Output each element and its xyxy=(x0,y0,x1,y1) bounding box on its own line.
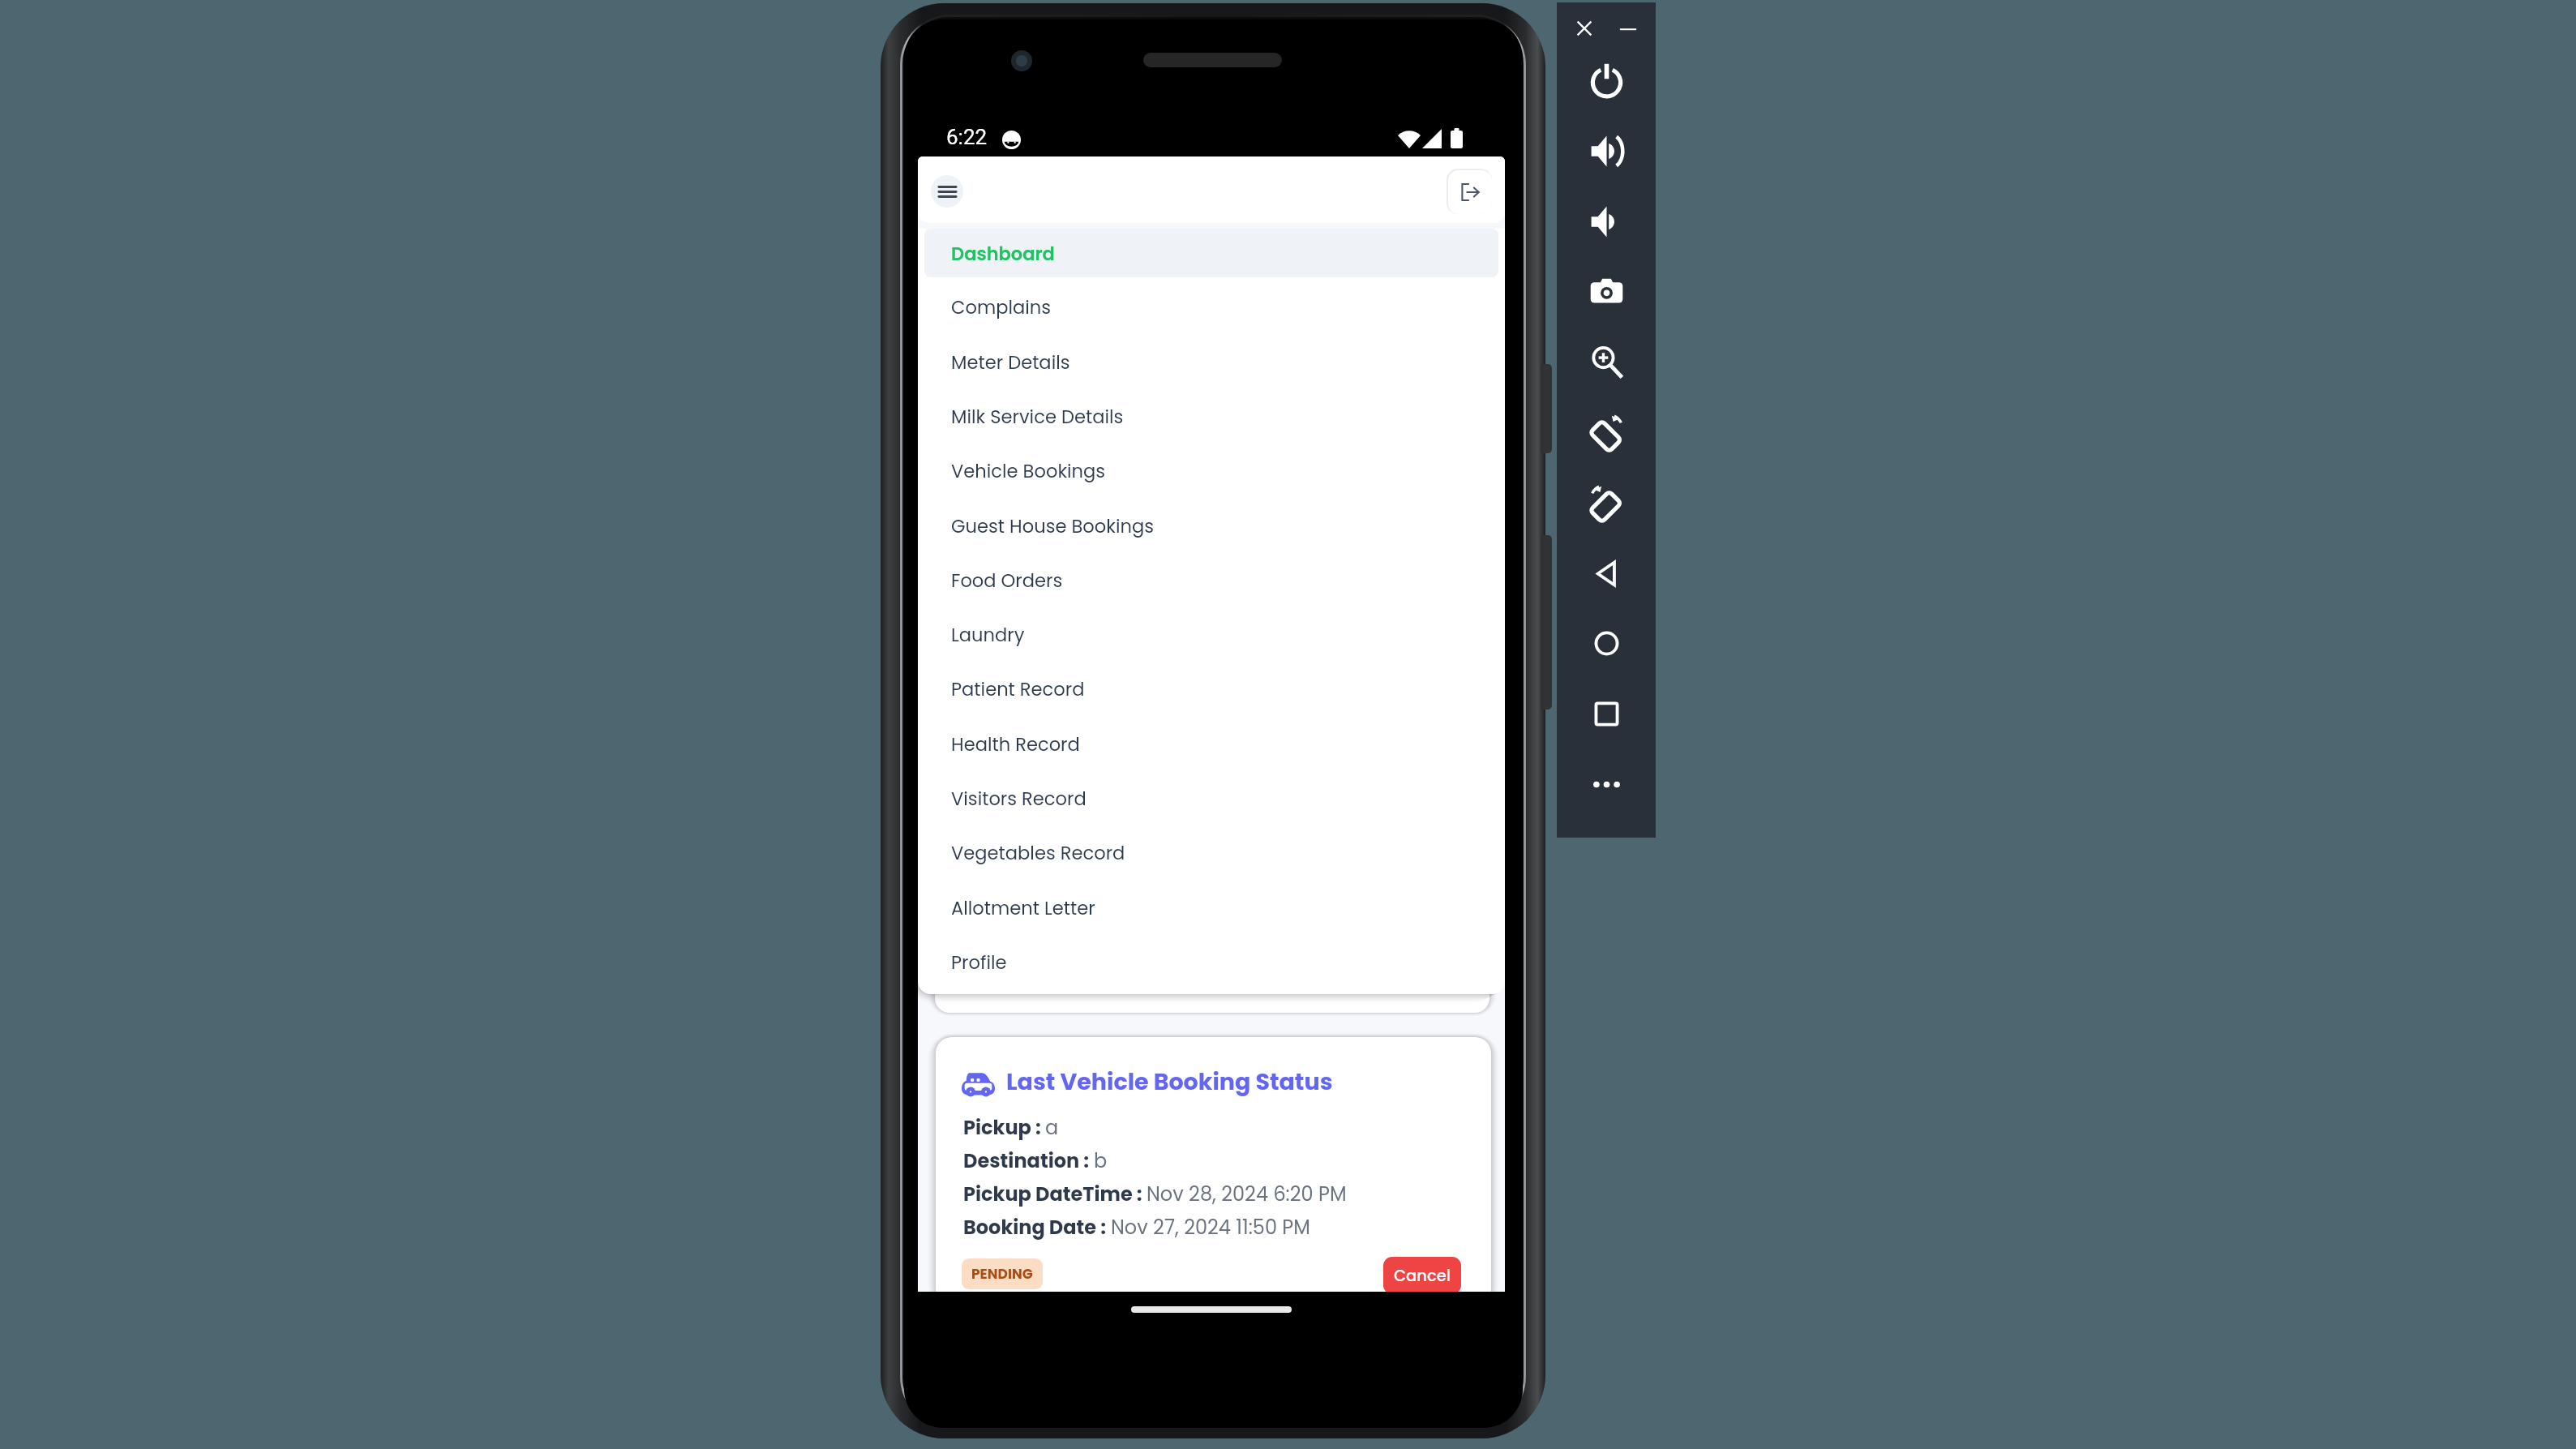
button[interactable]: Complains xyxy=(924,283,1498,332)
button[interactable]: Food Orders xyxy=(924,556,1498,605)
button[interactable]: Take screenshot xyxy=(1574,259,1639,324)
button[interactable]: Volume down xyxy=(1574,189,1639,254)
staticText: Booking Date : xyxy=(963,1214,1111,1241)
button[interactable]: More options xyxy=(1574,752,1639,817)
staticText: Dashboard xyxy=(951,241,1055,266)
button[interactable]: Home xyxy=(1574,611,1639,675)
button[interactable]: Laundry xyxy=(924,611,1498,659)
staticText: Pickup : xyxy=(963,1114,1045,1142)
button[interactable]: Zoom xyxy=(1574,329,1639,394)
button[interactable]: Guest House Bookings xyxy=(924,502,1498,551)
staticText: Meter Details xyxy=(951,349,1070,375)
staticText: Milk Service Details xyxy=(951,404,1124,430)
button[interactable]: Allotment Letter xyxy=(924,884,1498,932)
staticText: b xyxy=(1094,1147,1108,1175)
staticText: Health Record xyxy=(951,731,1080,757)
staticText: Cancel xyxy=(1394,1265,1451,1287)
staticText: Profile xyxy=(951,950,1007,975)
staticText: Guest House Bookings xyxy=(951,513,1154,539)
staticText: Allotment Letter xyxy=(951,895,1095,921)
button[interactable]: Meter Details xyxy=(924,338,1498,387)
staticText: Visitors Record xyxy=(951,786,1087,812)
button[interactable]: Patient Record xyxy=(924,665,1498,714)
button[interactable]: Power xyxy=(1574,48,1639,113)
staticText: Nov 28, 2024 6:20 PM xyxy=(1147,1181,1347,1208)
staticText: 6:22 xyxy=(946,125,988,149)
staticText: Last Vehicle Booking Status xyxy=(1006,1065,1333,1098)
staticText: Laundry xyxy=(951,622,1025,648)
button[interactable]: Vegetables Record xyxy=(924,829,1498,877)
staticText: Vegetables Record xyxy=(951,840,1125,866)
button[interactable]: Visitors Record xyxy=(924,774,1498,823)
button[interactable]: Rotate right xyxy=(1574,470,1639,535)
staticText: PENDING xyxy=(971,1264,1033,1284)
staticText: Complains xyxy=(951,294,1052,320)
button[interactable]: Logout xyxy=(1447,169,1492,214)
staticText: Vehicle Bookings xyxy=(951,458,1106,484)
button[interactable]: Close emulator xyxy=(1575,19,1594,38)
button[interactable]: Volume up xyxy=(1574,118,1639,183)
button[interactable]: Back xyxy=(1574,541,1639,606)
button[interactable]: Minimize emulator xyxy=(1618,19,1638,38)
button[interactable]: Cancel xyxy=(1383,1257,1461,1292)
staticText: Pickup DateTime : xyxy=(963,1181,1147,1208)
button[interactable]: Vehicle Bookings xyxy=(924,447,1498,495)
button[interactable]: Overview xyxy=(1574,681,1639,746)
button[interactable]: Milk Service Details xyxy=(924,392,1498,441)
button[interactable]: Profile xyxy=(924,938,1498,987)
button[interactable]: Health Record xyxy=(924,720,1498,769)
button[interactable]: Open navigation menu xyxy=(931,175,963,208)
button[interactable]: Rotate left xyxy=(1574,400,1639,465)
staticText: Destination : xyxy=(963,1147,1094,1175)
staticText: a xyxy=(1045,1114,1059,1142)
staticText: Food Orders xyxy=(951,568,1063,594)
staticText: Patient Record xyxy=(951,676,1085,702)
button[interactable]: Dashboard xyxy=(924,229,1498,277)
staticText: Nov 27, 2024 11:50 PM xyxy=(1111,1214,1310,1241)
